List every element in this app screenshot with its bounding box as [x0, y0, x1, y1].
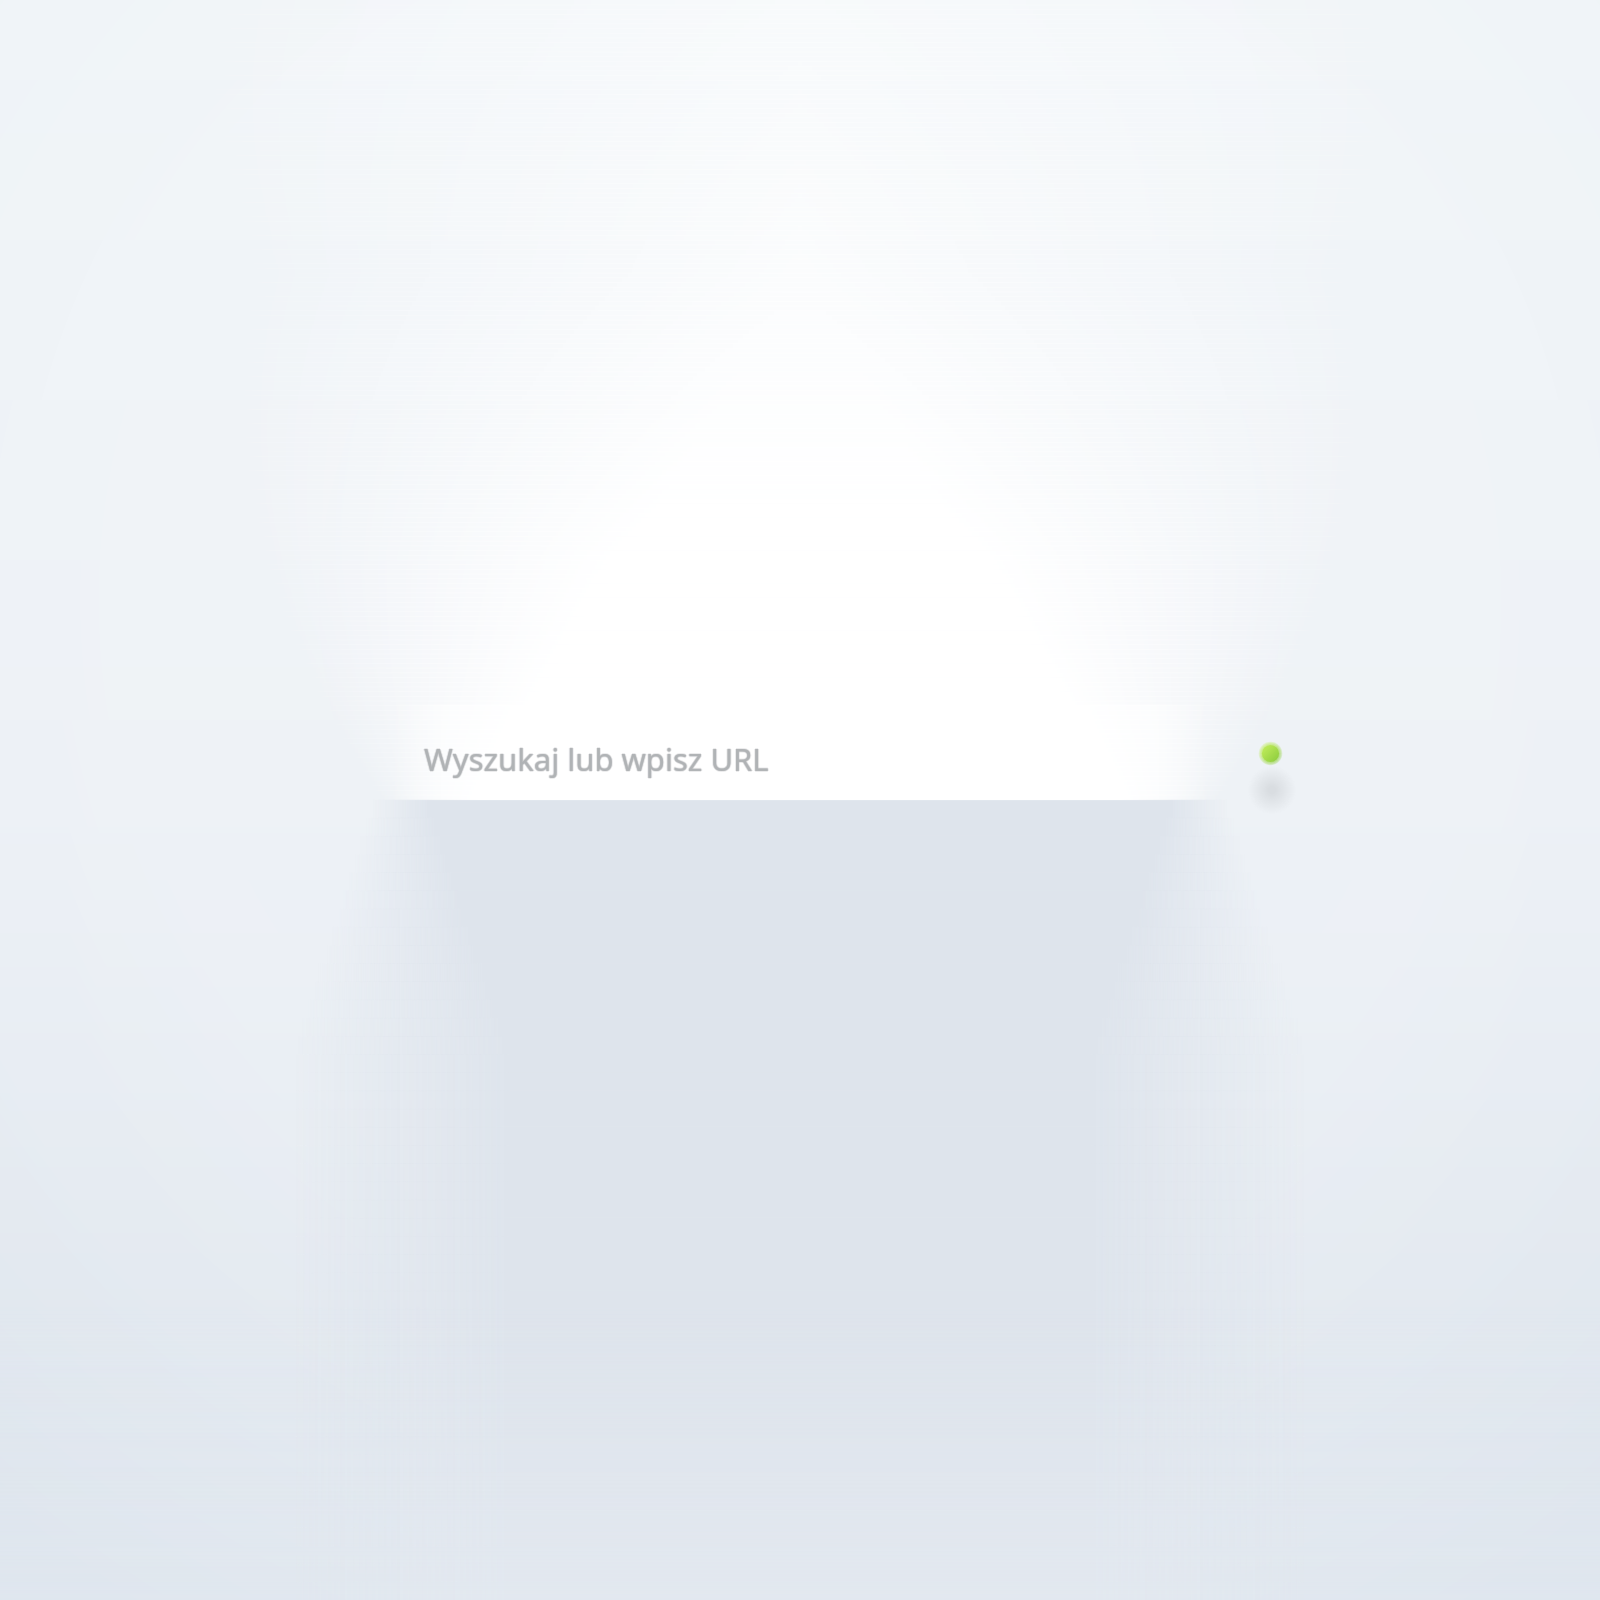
staticText: Wyszukaj lub wpisz URL [423, 738, 768, 780]
button[interactable]: Menu [1248, 767, 1296, 815]
button[interactable]: Wyszukaj lub wpisz URL [400, 700, 1200, 799]
button[interactable]: Stan strony [1246, 729, 1294, 777]
staticText: Wyszukaj lub wpisz URL [424, 739, 769, 781]
staticText: Wyszukaj lub wpisz URL [424, 738, 769, 780]
staticText: Wyszukaj lub wpisz URL [425, 738, 770, 780]
staticText: Wyszukaj lub wpisz URL [424, 737, 769, 779]
